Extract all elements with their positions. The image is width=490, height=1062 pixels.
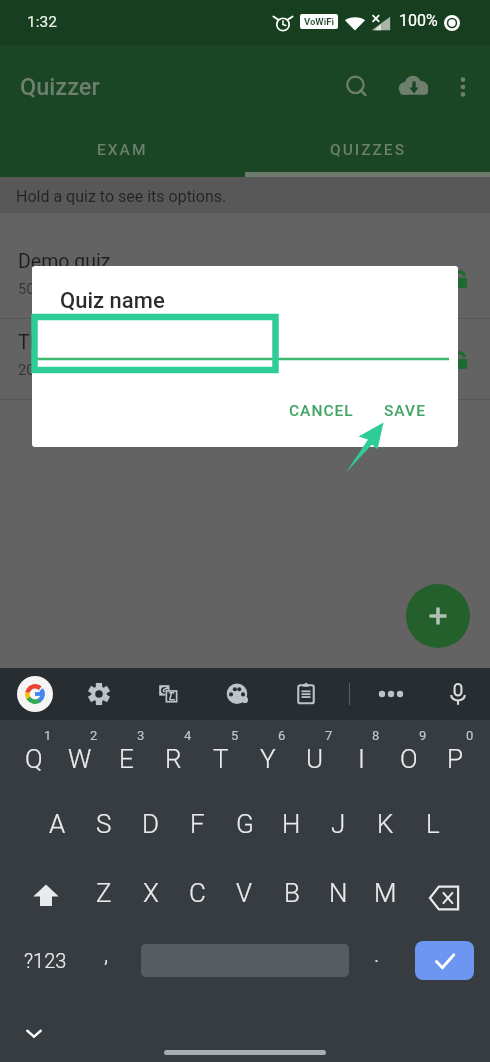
staticText: E: [119, 744, 134, 774]
button[interactable]: M: [362, 858, 409, 927]
staticText: J: [331, 809, 346, 839]
button[interactable]: S: [80, 789, 127, 858]
button[interactable]: The ultimate quiz: [0, 319, 490, 400]
button[interactable]: A: [34, 789, 80, 858]
button[interactable]: Hide keyboard: [20, 1019, 48, 1047]
staticText: 5: [231, 728, 239, 743]
staticText: D: [142, 809, 160, 839]
staticText: Z: [96, 878, 112, 908]
button[interactable]: Shift: [11, 858, 81, 927]
staticText: EXAM: [97, 141, 148, 159]
staticText: F: [190, 809, 205, 839]
staticText: CANCEL: [289, 402, 354, 420]
button[interactable]: SAVE: [372, 394, 438, 428]
button[interactable]: Download: [392, 65, 436, 109]
staticText: Q: [25, 744, 43, 774]
button[interactable]: Y: [244, 720, 291, 789]
staticText: 9: [419, 728, 427, 743]
staticText: O: [400, 744, 418, 774]
staticText: H: [282, 809, 301, 839]
button[interactable]: O: [385, 720, 432, 789]
button[interactable]: Backspace: [409, 858, 479, 927]
button[interactable]: K: [362, 789, 409, 858]
staticText: S: [96, 809, 112, 839]
button[interactable]: Demo quiz: [0, 238, 490, 319]
button[interactable]: ,: [91, 927, 121, 993]
button[interactable]: EXAM: [0, 123, 245, 177]
staticText: 7: [325, 728, 333, 743]
staticText: M: [374, 878, 397, 908]
button[interactable]: Voice input: [440, 676, 476, 712]
button[interactable]: E: [103, 720, 150, 789]
staticText: Y: [260, 744, 276, 774]
button[interactable]: Google: [17, 676, 53, 712]
button[interactable]: Q: [11, 720, 57, 789]
staticText: Quiz name: [60, 288, 165, 314]
staticText: G: [236, 809, 254, 839]
button[interactable]: CANCEL: [277, 394, 366, 428]
button[interactable]: T: [197, 720, 244, 789]
staticText: 6: [278, 728, 286, 743]
staticText: Quizzer: [20, 73, 100, 101]
staticText: 8: [372, 728, 380, 743]
button[interactable]: W: [57, 720, 103, 789]
button[interactable]: R: [150, 720, 197, 789]
button[interactable]: N: [315, 858, 362, 927]
staticText: U: [306, 744, 324, 774]
button[interactable]: Clipboard: [288, 676, 324, 712]
button[interactable]: D: [127, 789, 174, 858]
staticText: 2: [90, 728, 98, 743]
staticText: 4: [184, 728, 192, 743]
button[interactable]: Settings: [81, 676, 117, 712]
button[interactable]: X: [127, 858, 174, 927]
button[interactable]: C: [174, 858, 221, 927]
button[interactable]: Z: [81, 858, 127, 927]
staticText: A: [49, 809, 66, 839]
button[interactable]: L: [409, 789, 456, 858]
staticText: W: [68, 744, 92, 774]
button[interactable]: Translate: [150, 676, 186, 712]
button[interactable]: Themes: [219, 676, 255, 712]
staticText: N: [329, 878, 348, 908]
button[interactable]: J: [315, 789, 362, 858]
button[interactable]: ?123: [0, 927, 91, 993]
staticText: 1:32: [27, 13, 57, 31]
staticText: P: [447, 744, 464, 774]
staticText: 100%: [399, 11, 438, 30]
button[interactable]: QUIZZES: [245, 123, 490, 177]
button[interactable]: Enter: [415, 941, 474, 980]
button[interactable]: .: [355, 927, 399, 993]
staticText: .: [374, 942, 380, 968]
staticText: 50 questions: [18, 281, 102, 298]
button[interactable]: Add quiz: [406, 584, 470, 648]
staticText: 0: [466, 728, 474, 743]
button[interactable]: V: [221, 858, 268, 927]
staticText: Hold a quiz to see its options.: [16, 187, 227, 206]
button[interactable]: I: [338, 720, 385, 789]
staticText: SAVE: [384, 402, 426, 420]
staticText: 20 questions: [18, 362, 102, 379]
staticText: V: [236, 878, 253, 908]
staticText: X: [143, 878, 159, 908]
staticText: QUIZZES: [330, 141, 406, 159]
staticText: I: [358, 744, 365, 774]
staticText: T: [213, 744, 229, 774]
button[interactable]: F: [174, 789, 221, 858]
button[interactable]: Search: [335, 65, 379, 109]
button[interactable]: Space: [121, 927, 355, 993]
staticText: B: [284, 878, 300, 908]
button[interactable]: H: [268, 789, 315, 858]
button[interactable]: G: [221, 789, 268, 858]
button[interactable]: P: [432, 720, 479, 789]
staticText: 3: [137, 728, 145, 743]
staticText: 1: [44, 728, 52, 743]
button[interactable]: More options: [441, 65, 485, 109]
button[interactable]: B: [268, 858, 315, 927]
button[interactable]: More: [373, 676, 409, 712]
button[interactable]: U: [291, 720, 338, 789]
staticText: R: [165, 744, 182, 774]
staticText: L: [426, 809, 440, 839]
staticText: ?123: [24, 949, 67, 972]
staticText: Demo quiz: [18, 250, 111, 273]
staticText: VoWiFi: [304, 16, 334, 27]
